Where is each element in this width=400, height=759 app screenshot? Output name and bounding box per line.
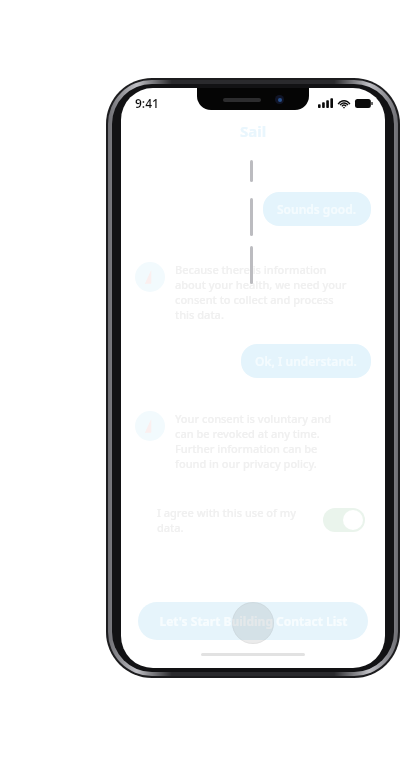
- staticText: Sail: [240, 121, 267, 141]
- button[interactable]: Ok, I understand.: [241, 344, 371, 378]
- staticText: 9:41: [135, 95, 159, 111]
- staticText: Ok, I understand.: [255, 353, 357, 369]
- staticText: I agree with this use of my data.: [157, 505, 297, 535]
- button[interactable]: Consent toggle: [323, 508, 365, 532]
- button[interactable]: I agree with this use of my data.: [135, 501, 371, 539]
- staticText: Because there is information about your …: [175, 262, 347, 322]
- staticText: Sounds good.: [277, 201, 357, 217]
- button[interactable]: Let's Start Building Contact List: [138, 602, 368, 640]
- staticText: Let's Start Building Contact List: [159, 613, 348, 629]
- staticText: Your consent is voluntary and can be rev…: [175, 411, 331, 471]
- button[interactable]: Sounds good.: [263, 192, 371, 226]
